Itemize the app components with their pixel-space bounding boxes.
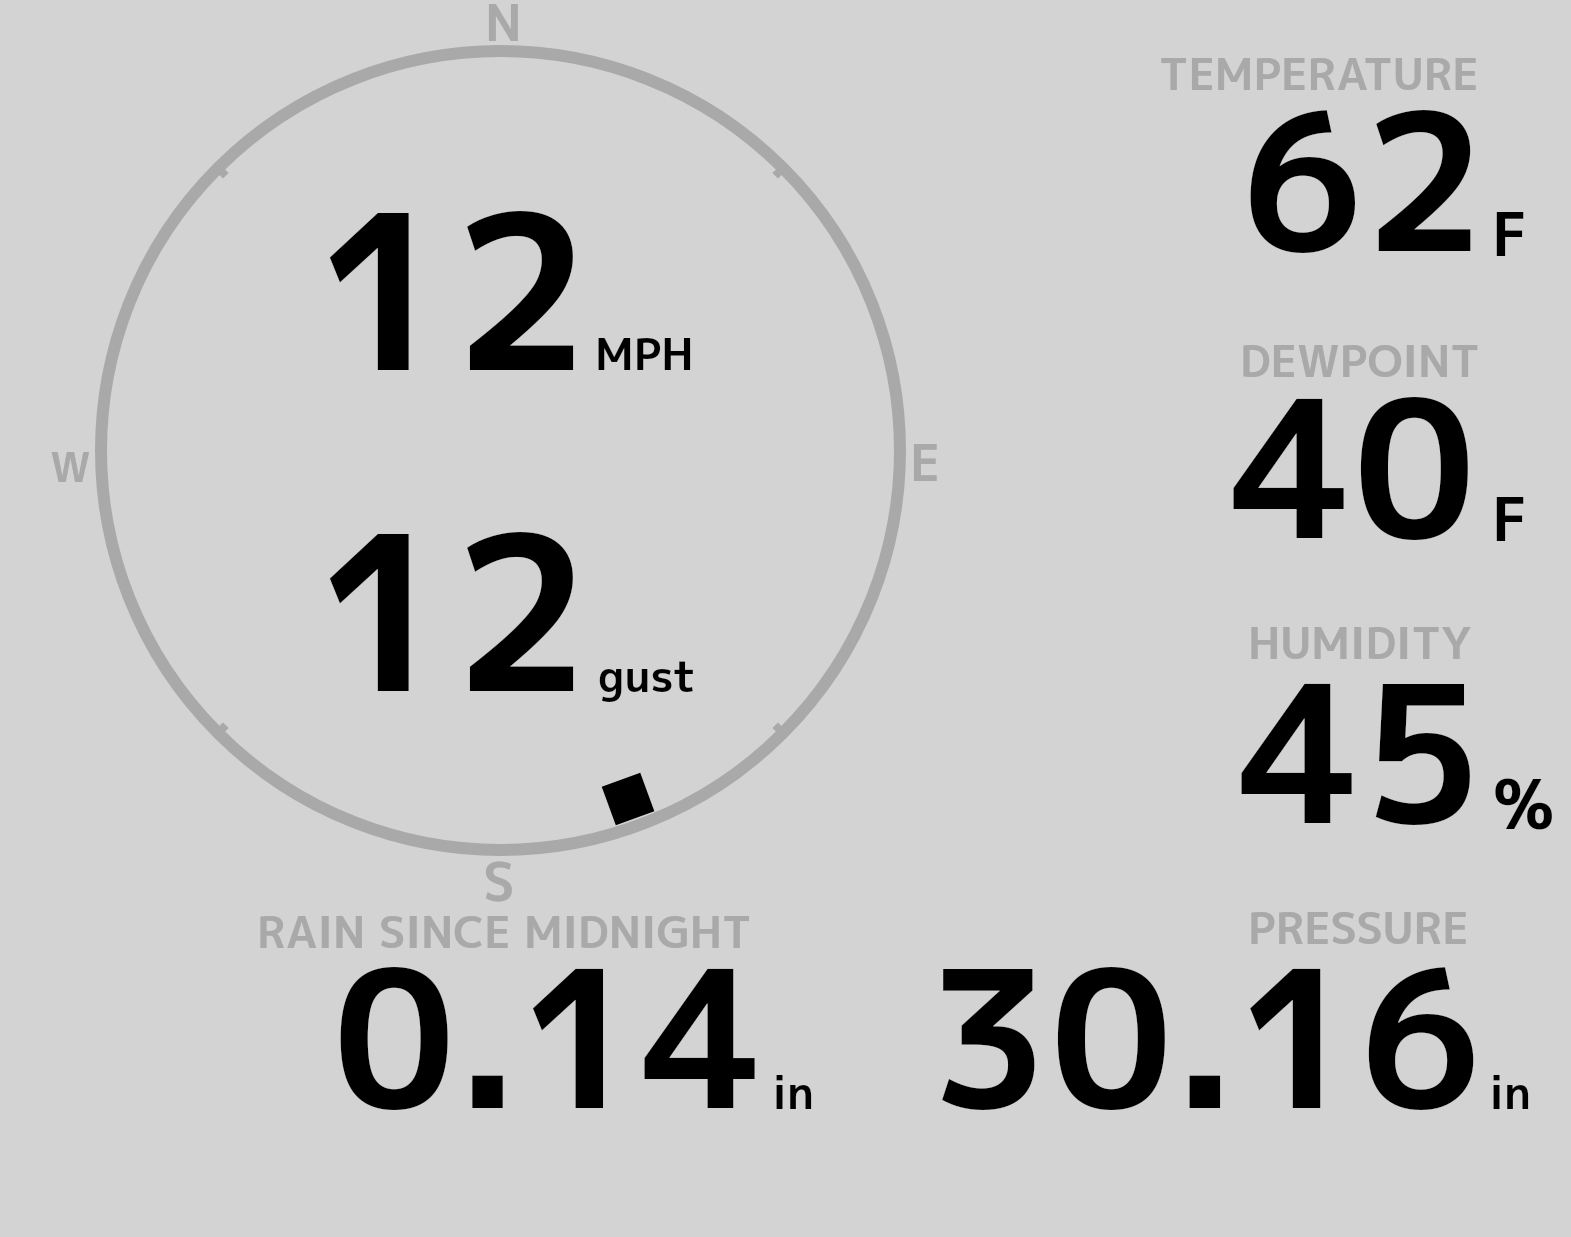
staticText: 12 (315, 139, 591, 439)
staticText: F (1492, 191, 1528, 275)
button[interactable]: Temperature 62 degrees Fahrenheit (1150, 40, 1550, 265)
staticText: S (483, 845, 515, 918)
staticText: 45 (1239, 618, 1484, 884)
button[interactable]: Dewpoint 40 degrees Fahrenheit (1150, 325, 1550, 550)
staticText: 12 (315, 460, 591, 760)
staticText: E (910, 427, 941, 497)
staticText: 62 (1241, 46, 1486, 312)
button[interactable]: Wind direction dial, 12 miles per hour f… (95, 45, 906, 856)
staticText: % (1493, 756, 1555, 851)
button[interactable]: Rain since midnight 0.14 inches (250, 895, 830, 1120)
staticText: PRESSURE (1248, 897, 1469, 958)
staticText: HUMIDITY (1248, 612, 1472, 673)
button[interactable]: Humidity 45 percent (1150, 610, 1550, 835)
staticText: 40 (1231, 333, 1476, 599)
staticText: 30.16 (928, 903, 1482, 1169)
staticText: W (50, 437, 91, 496)
staticText: RAIN SINCE MIDNIGHT (257, 901, 752, 962)
staticText: MPH (595, 323, 694, 384)
staticText: F (1492, 476, 1528, 560)
staticText: 0.14 (333, 903, 765, 1169)
staticText: in (1489, 1061, 1532, 1124)
staticText: in (772, 1061, 815, 1124)
staticText: gust (598, 645, 697, 706)
staticText: TEMPERATURE (1159, 43, 1479, 104)
staticText: N (485, 0, 522, 57)
button[interactable]: Pressure 30.16 inches (900, 895, 1540, 1120)
staticText: DEWPOINT (1240, 330, 1480, 391)
